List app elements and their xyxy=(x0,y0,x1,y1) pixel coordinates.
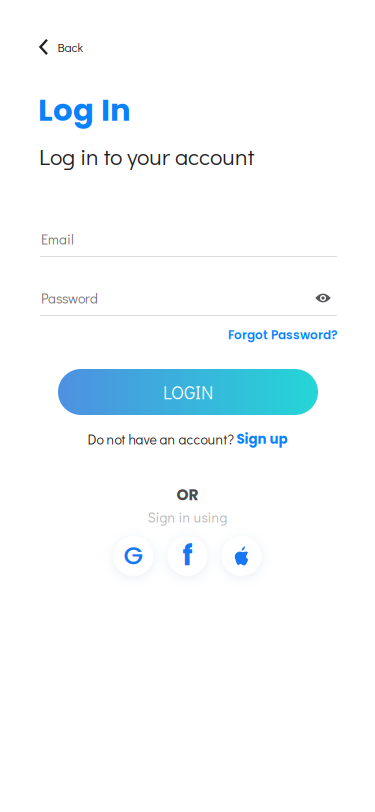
staticText: G xyxy=(123,538,143,573)
staticText: f xyxy=(182,536,192,575)
button[interactable]: Show password xyxy=(307,285,339,311)
button[interactable]: Forgot Password? xyxy=(177,325,337,345)
staticText: Forgot Password? xyxy=(228,327,337,343)
button[interactable]: Sign in with Facebook xyxy=(167,536,207,576)
staticText: Sign in using xyxy=(147,508,227,526)
staticText: Password xyxy=(41,289,98,307)
button[interactable]: Sign in with Google xyxy=(113,536,153,576)
staticText: Do not have an account? xyxy=(87,430,236,448)
button[interactable]: Sign up xyxy=(236,430,287,448)
staticText: Email xyxy=(41,230,74,248)
staticText: Sign up xyxy=(236,430,287,448)
button[interactable]: Back xyxy=(39,35,129,59)
button[interactable]: Sign in with Apple xyxy=(221,536,261,576)
staticText: Log In xyxy=(38,88,131,131)
staticText: OR xyxy=(176,484,198,506)
staticText: Log in to your account xyxy=(39,141,254,171)
staticText: Back xyxy=(57,39,83,55)
button[interactable]: LOGIN xyxy=(58,369,318,415)
staticText: LOGIN xyxy=(163,380,213,404)
